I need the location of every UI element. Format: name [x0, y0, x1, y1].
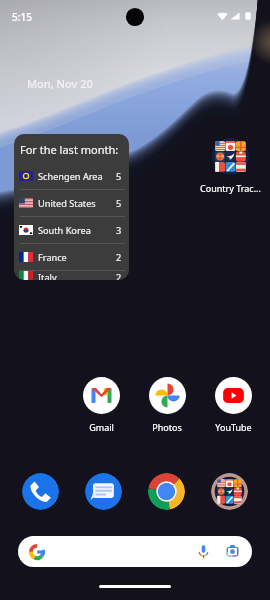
button[interactable]: France [14, 244, 129, 270]
button[interactable] [18, 536, 252, 567]
staticText: Photos [152, 421, 182, 433]
button[interactable]: Country Trac... [195, 138, 265, 194]
button[interactable]: Schengen Area [14, 163, 129, 189]
staticText: Italy [38, 271, 57, 280]
staticText: Gmail [89, 421, 114, 433]
staticText: Schengen Area [38, 170, 103, 183]
button[interactable]: Italy [14, 271, 129, 280]
staticText: France [38, 251, 67, 264]
button[interactable]: Messages [85, 473, 122, 510]
staticText: 2 [116, 251, 122, 264]
button[interactable]: United States [14, 190, 129, 216]
staticText: For the last month: [20, 142, 119, 157]
staticText: 5 [116, 170, 122, 183]
staticText: 2 [116, 271, 122, 280]
staticText: Country Trac... [200, 182, 261, 194]
button[interactable]: Chrome [148, 473, 185, 510]
staticText: 5 [116, 197, 122, 210]
button[interactable]: Country Tracker [211, 473, 248, 510]
button[interactable]: YouTube [198, 377, 268, 433]
staticText: 5:15 [12, 10, 32, 24]
button[interactable]: Phone [22, 473, 59, 510]
staticText: South Korea [38, 224, 91, 237]
button[interactable]: South Korea [14, 217, 129, 243]
button[interactable]: Photos [132, 377, 202, 433]
staticText: YouTube [215, 421, 252, 433]
staticText: Mon, Nov 20 [27, 76, 93, 91]
button[interactable]: For the last month: [14, 134, 129, 280]
staticText: United States [38, 197, 96, 210]
staticText: 3 [116, 224, 122, 237]
button[interactable]: Gmail [66, 377, 136, 433]
